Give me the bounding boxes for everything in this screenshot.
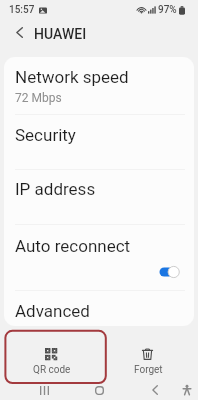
button[interactable]: Forget	[104, 328, 198, 377]
button[interactable]: Recent apps	[32, 380, 56, 400]
staticText: 72 Mbps	[15, 91, 62, 105]
button[interactable]: Navigate up	[9, 22, 30, 43]
button[interactable]: Security	[4, 115, 194, 170]
staticText: HUAWEI	[34, 26, 87, 42]
staticText: IP address	[15, 179, 96, 199]
button[interactable]: IP address	[4, 170, 194, 225]
staticText: 15:57	[9, 4, 35, 16]
button[interactable]: Advanced	[4, 291, 194, 326]
staticText: Advanced	[15, 301, 90, 321]
staticText: Security	[15, 125, 76, 145]
button[interactable]: Accessibility	[175, 380, 198, 400]
button[interactable]: Auto reconnect	[157, 263, 185, 281]
button[interactable]: Network speed	[4, 57, 194, 114]
staticText: Forget	[134, 364, 163, 376]
staticText: 97%	[158, 4, 177, 16]
staticText: Auto reconnect	[15, 236, 131, 256]
staticText: Network speed	[15, 67, 129, 87]
button[interactable]: Auto reconnect	[4, 225, 194, 291]
button[interactable]: Home	[87, 380, 111, 400]
button[interactable]: QR code	[3, 328, 104, 377]
staticText: QR code	[33, 364, 71, 376]
button[interactable]: Back	[143, 380, 167, 400]
